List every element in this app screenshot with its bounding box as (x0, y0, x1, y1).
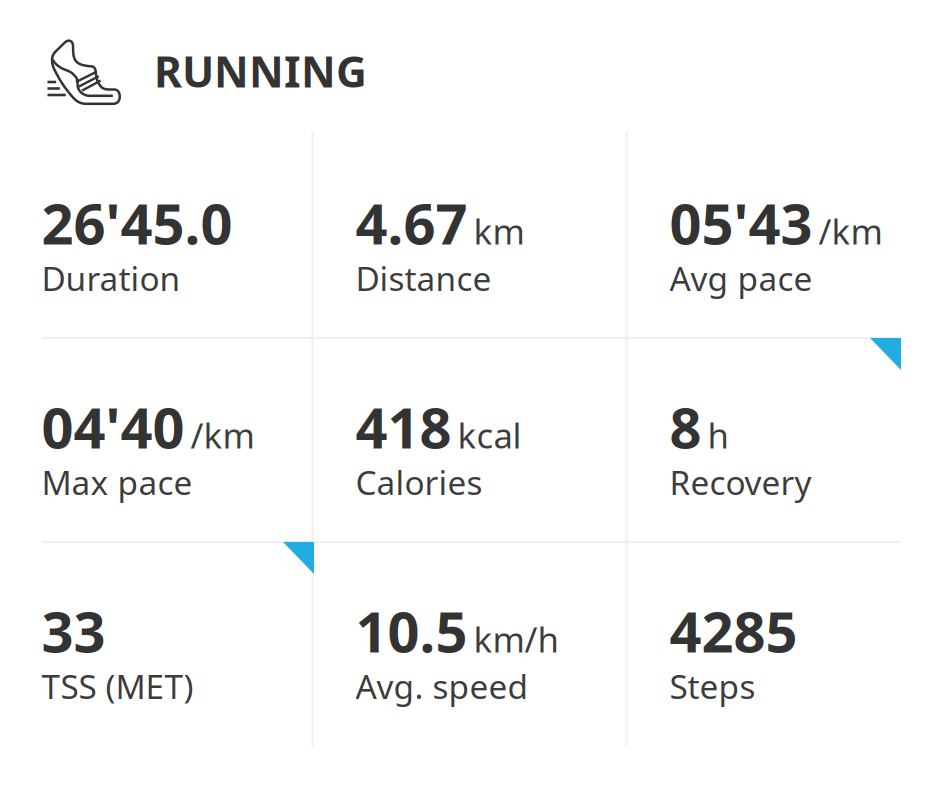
staticText: h (707, 412, 728, 458)
staticText: TSS (MET) (41, 664, 193, 708)
staticText: Avg. speed (355, 664, 528, 708)
staticText: RUNNING (154, 43, 367, 99)
staticText: 26'45.0 (41, 185, 232, 260)
staticText: /km (190, 412, 254, 458)
button[interactable]: RUNNING (44, 24, 424, 116)
button[interactable]: 4285 (628, 539, 942, 743)
button[interactable]: 4.67 (314, 131, 628, 335)
staticText: 8 (669, 389, 701, 464)
staticText: Distance (355, 256, 491, 300)
staticText: 4285 (669, 593, 797, 668)
staticText: 33 (41, 593, 105, 668)
staticText: Calories (355, 460, 482, 504)
staticText: Max pace (41, 460, 192, 504)
staticText: kcal (457, 412, 521, 458)
staticText: Recovery (669, 460, 811, 504)
button[interactable]: 10.5 (314, 539, 628, 743)
staticText: 10.5 (355, 593, 467, 668)
button[interactable]: 04'40 (0, 335, 314, 539)
staticText: km (473, 208, 524, 254)
staticText: Steps (669, 664, 755, 708)
button[interactable]: 8 (628, 335, 942, 539)
button[interactable]: 26'45.0 (0, 131, 314, 335)
button[interactable]: 418 (314, 335, 628, 539)
staticText: 4.67 (355, 185, 467, 260)
staticText: 05'43 (669, 185, 812, 260)
button[interactable]: 33 (0, 539, 314, 743)
staticText: Avg pace (669, 256, 812, 300)
staticText: Duration (41, 256, 180, 300)
staticText: 04'40 (41, 389, 184, 464)
staticText: 418 (355, 389, 451, 464)
staticText: km/h (473, 616, 558, 662)
staticText: /km (818, 208, 882, 254)
button[interactable]: 05'43 (628, 131, 942, 335)
